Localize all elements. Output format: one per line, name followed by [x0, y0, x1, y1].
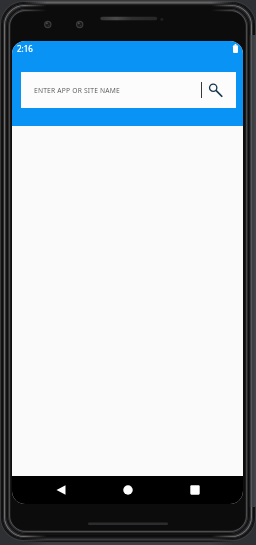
button[interactable]: Recent apps: [172, 476, 217, 504]
staticText: ENTER APP OR SITE NAME: [34, 86, 121, 95]
button[interactable]: Search: [205, 78, 231, 102]
staticText: 2:16: [17, 43, 33, 54]
button[interactable]: ENTER APP OR SITE NAME: [21, 72, 236, 108]
button[interactable]: Home: [105, 476, 150, 504]
button[interactable]: Back: [38, 476, 83, 504]
